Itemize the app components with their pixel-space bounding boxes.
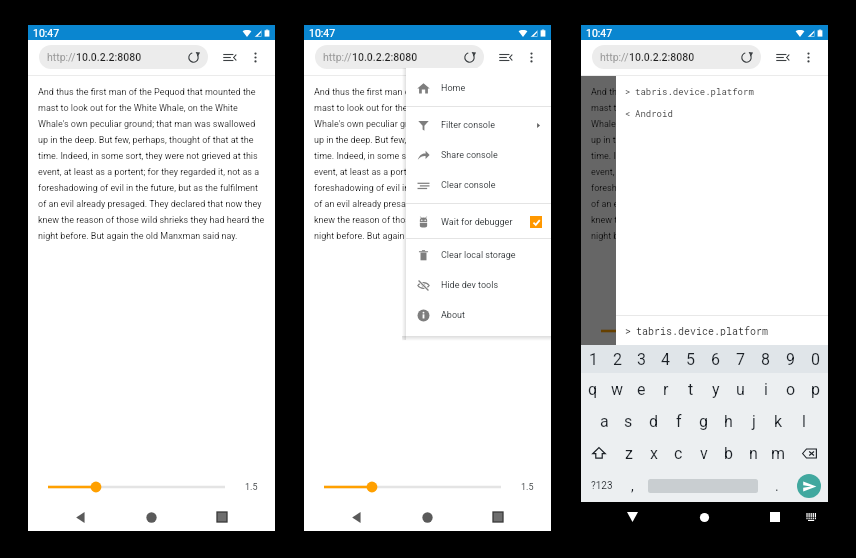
button[interactable]: Text scale (601, 323, 778, 339)
button[interactable]: r (653, 373, 678, 405)
button[interactable]: http:// (39, 45, 208, 69)
button[interactable]: > (616, 316, 828, 345)
button[interactable]: e (629, 373, 653, 405)
button[interactable]: 4 (653, 345, 678, 373)
button[interactable]: Developer console (217, 45, 241, 69)
button[interactable]: w (605, 373, 629, 405)
staticText: v (700, 444, 708, 463)
button[interactable]: Recents (208, 503, 236, 531)
staticText: 10.0.2.2:8080 (629, 51, 695, 63)
button[interactable]: , (619, 469, 645, 502)
button[interactable]: i (753, 373, 778, 405)
button[interactable]: Share console (406, 140, 551, 170)
button[interactable]: 8 (753, 345, 778, 373)
button[interactable]: Switch keyboard (798, 504, 824, 530)
button[interactable]: Back (66, 503, 94, 531)
button[interactable]: Filter console (406, 110, 551, 140)
button[interactable]: t (678, 373, 703, 405)
staticText: http:// (47, 51, 76, 63)
button[interactable]: u (728, 373, 753, 405)
staticText: j (752, 412, 756, 431)
button[interactable]: http:// (315, 45, 484, 69)
button[interactable]: l (791, 405, 816, 437)
button[interactable]: Shift (581, 437, 617, 469)
staticText: e (637, 380, 646, 399)
button[interactable]: Space (645, 469, 761, 502)
staticText: s (624, 412, 633, 431)
button[interactable]: Hide keyboard (619, 504, 645, 530)
staticText: u (736, 380, 745, 399)
button[interactable]: Wait for debugger (406, 207, 551, 237)
button[interactable]: m (766, 437, 791, 469)
button[interactable]: Recents (484, 503, 512, 531)
staticText: tabris.device.platform (635, 86, 754, 97)
staticText: > (625, 86, 631, 97)
button[interactable]: Home (691, 504, 717, 530)
button[interactable]: q (581, 373, 605, 405)
button[interactable]: Hide dev tools (406, 270, 551, 300)
staticText: o (786, 380, 796, 399)
button[interactable]: 7 (728, 345, 753, 373)
button[interactable]: About (406, 300, 551, 330)
button[interactable]: 6 (703, 345, 728, 373)
staticText: Filter console (441, 120, 495, 131)
button[interactable]: x (641, 437, 666, 469)
button[interactable]: Home (413, 503, 441, 531)
button[interactable]: Clear console (406, 170, 551, 200)
staticText: 4 (661, 350, 670, 369)
button[interactable]: Developer console (770, 45, 794, 69)
button[interactable]: n (741, 437, 766, 469)
staticText: f (676, 412, 682, 431)
button[interactable]: j (741, 405, 766, 437)
button[interactable]: Text scale (48, 479, 225, 495)
button[interactable]: Backspace (791, 437, 828, 469)
staticText: d (649, 412, 659, 431)
button[interactable]: More options (243, 45, 267, 69)
button[interactable]: . (764, 469, 790, 502)
button[interactable]: g (691, 405, 716, 437)
button[interactable]: Home (137, 503, 165, 531)
button[interactable]: More options (519, 45, 543, 69)
button[interactable]: f (666, 405, 691, 437)
button[interactable]: a (592, 405, 616, 437)
button[interactable]: http:// (592, 45, 761, 69)
button[interactable]: o (778, 373, 803, 405)
button[interactable]: v (691, 437, 716, 469)
staticText: g (699, 412, 708, 431)
button[interactable]: z (617, 437, 641, 469)
button[interactable]: Recents (762, 504, 788, 530)
staticText: i (764, 380, 768, 399)
button[interactable]: Send (792, 469, 825, 502)
staticText: 3 (637, 350, 646, 369)
button[interactable]: Clear local storage (406, 240, 551, 270)
staticText: m (771, 444, 786, 463)
staticText: k (774, 412, 783, 431)
button[interactable]: Developer console (493, 45, 517, 69)
button[interactable]: Back (342, 503, 370, 531)
button[interactable]: h (716, 405, 741, 437)
button[interactable]: b (716, 437, 741, 469)
button[interactable]: y (703, 373, 728, 405)
button[interactable]: 9 (778, 345, 803, 373)
button[interactable]: Home (406, 73, 551, 103)
button[interactable]: c (666, 437, 691, 469)
button[interactable]: k (766, 405, 791, 437)
button[interactable]: p (803, 373, 828, 405)
button[interactable]: 2 (605, 345, 629, 373)
button[interactable]: 0 (803, 345, 828, 373)
staticText: About (441, 310, 465, 321)
button[interactable]: 3 (629, 345, 653, 373)
button[interactable]: Text scale (324, 479, 501, 495)
button[interactable]: More options (796, 45, 820, 69)
button[interactable]: d (641, 405, 666, 437)
staticText: 1.5 (245, 482, 258, 493)
staticText: q (588, 380, 598, 399)
staticText: Home (441, 83, 466, 94)
button[interactable]: 1 (581, 345, 605, 373)
button[interactable]: s (616, 405, 641, 437)
staticText: Clear console (441, 180, 496, 191)
button[interactable]: 5 (678, 345, 703, 373)
staticText: 10:47 (33, 27, 60, 39)
button[interactable]: Symbols (586, 469, 618, 502)
